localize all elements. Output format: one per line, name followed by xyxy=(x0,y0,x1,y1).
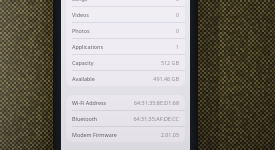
staticText: 0 xyxy=(175,11,179,18)
staticText: Modem Firmware xyxy=(72,131,117,138)
staticText: Songs xyxy=(72,0,88,2)
staticText: 0 xyxy=(175,0,179,2)
button[interactable]: Available xyxy=(66,71,185,86)
button[interactable]: Bluetooth xyxy=(66,111,185,127)
button[interactable]: Photos xyxy=(66,23,185,39)
staticText: Capacity xyxy=(72,59,94,66)
button[interactable]: Applications xyxy=(66,39,185,55)
button[interactable]: Songs xyxy=(66,0,185,7)
staticText: Bluetooth xyxy=(72,115,98,122)
staticText: 64:31:35:AF:DE:CC xyxy=(133,115,179,122)
staticText: 64:31:35:8E:D1:68 xyxy=(134,99,179,106)
staticText: 1 xyxy=(175,43,179,50)
staticText: 2.01.05 xyxy=(160,131,179,138)
button[interactable]: Wi-Fi Address xyxy=(66,95,185,111)
staticText: Available xyxy=(72,75,95,82)
button[interactable]: Modem Firmware xyxy=(66,127,185,142)
staticText: Wi-Fi Address xyxy=(72,99,107,106)
staticText: 0 xyxy=(175,27,179,34)
button[interactable]: Capacity xyxy=(66,55,185,71)
button[interactable]: Videos xyxy=(66,7,185,23)
staticText: 491.46 GB xyxy=(153,75,179,82)
staticText: Photos xyxy=(72,27,90,34)
staticText: Videos xyxy=(72,11,89,18)
staticText: 512 GB xyxy=(160,59,179,66)
staticText: Applications xyxy=(72,43,103,50)
